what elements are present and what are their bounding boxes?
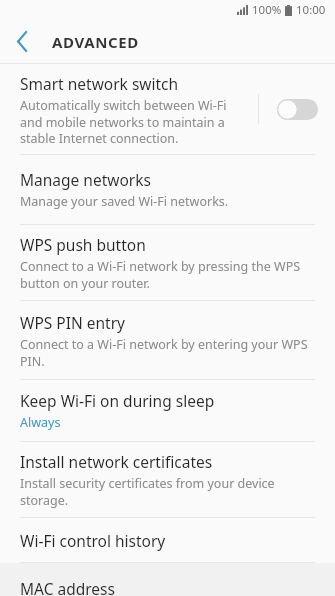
button[interactable]: Smart network switch toggle — [259, 64, 335, 154]
button[interactable]: Install network certificates — [0, 442, 335, 517]
staticText: Wi-Fi control history — [20, 530, 166, 551]
button[interactable]: Manage networks — [0, 155, 335, 224]
staticText: Keep Wi-Fi on during sleep — [20, 390, 215, 411]
staticText: Smart network switch — [20, 73, 179, 94]
button[interactable]: MAC address — [0, 563, 335, 596]
staticText: MAC address — [20, 578, 115, 596]
staticText: WPS push button — [20, 234, 146, 255]
staticText: WPS PIN entry — [20, 312, 125, 333]
button[interactable]: Smart network switch — [0, 64, 335, 154]
staticText: Manage your saved Wi-Fi networks. — [20, 193, 229, 210]
staticText: Connect to a Wi-Fi network by entering y… — [20, 336, 313, 369]
staticText: Always — [20, 414, 61, 431]
staticText: Manage networks — [20, 169, 151, 190]
staticText: Install security certificates from your … — [20, 475, 313, 508]
button[interactable]: WPS PIN entry — [0, 301, 335, 379]
staticText: Connect to a Wi-Fi network by pressing t… — [20, 258, 313, 291]
staticText: Install network certificates — [20, 451, 213, 472]
staticText: 10:00 — [296, 2, 326, 18]
button[interactable]: Keep Wi-Fi on during sleep — [0, 380, 335, 441]
staticText: 100% — [252, 2, 282, 18]
button[interactable]: Wi-Fi control history — [0, 518, 335, 562]
button[interactable]: Back — [0, 20, 44, 63]
staticText: ADVANCED — [52, 32, 139, 52]
button[interactable]: WPS push button — [0, 225, 335, 300]
staticText: Automatically switch between Wi-Fi and m… — [20, 97, 246, 146]
